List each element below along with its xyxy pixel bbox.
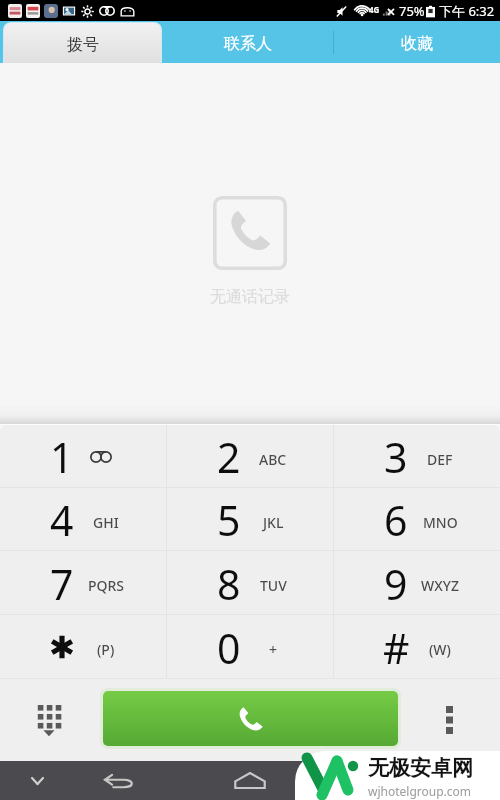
staticText: GHI — [93, 513, 119, 532]
staticText: PQRS — [88, 576, 125, 595]
staticText: 1 — [50, 429, 74, 485]
button[interactable]: More options — [432, 703, 466, 737]
staticText: ABC — [259, 450, 287, 469]
button[interactable]: Home — [226, 761, 274, 800]
staticText: 8 — [217, 556, 241, 612]
staticText: 联系人 — [224, 34, 272, 54]
button[interactable]: (P) — [0, 615, 166, 678]
staticText: MNO — [423, 513, 458, 532]
button[interactable]: 9 — [334, 551, 500, 614]
staticText: 75% — [399, 2, 425, 20]
staticText: JKL — [263, 513, 284, 532]
staticText: (P) — [97, 640, 115, 659]
button[interactable]: 0 — [167, 615, 333, 678]
staticText: 拨号 — [67, 35, 99, 55]
staticText: 4G — [369, 4, 380, 15]
button[interactable]: Call — [103, 691, 398, 746]
staticText: DEF — [427, 450, 453, 469]
staticText: 6 — [384, 492, 408, 548]
button[interactable]: Back — [95, 761, 143, 800]
button[interactable]: 4 — [0, 488, 166, 550]
button[interactable]: Recent apps — [351, 761, 399, 800]
button[interactable]: 2 — [167, 425, 333, 487]
staticText: 2 — [217, 429, 241, 485]
button[interactable]: 7 — [0, 551, 166, 614]
staticText: 7 — [50, 556, 74, 612]
button[interactable]: 联系人 — [162, 21, 333, 63]
staticText: # — [383, 620, 410, 676]
button[interactable]: 拨号 — [4, 23, 161, 63]
staticText: WXYZ — [421, 576, 459, 595]
button[interactable]: 8 — [167, 551, 333, 614]
button[interactable]: 收藏 — [334, 21, 500, 63]
button[interactable]: 3 — [334, 425, 500, 487]
staticText: 收藏 — [401, 34, 433, 54]
staticText: 无通话记录 — [210, 287, 290, 307]
button[interactable]: 1 — [0, 425, 166, 487]
button[interactable]: 5 — [167, 488, 333, 550]
staticText: 无极安卓网 — [368, 755, 473, 781]
staticText: wjhotelgroup.com — [368, 783, 472, 799]
staticText: 0 — [217, 620, 241, 676]
button[interactable]: Show dialpad — [26, 697, 72, 743]
staticText: TUV — [260, 576, 287, 595]
staticText: 下午 6:32 — [439, 2, 495, 20]
button[interactable]: Hide keyboard — [15, 761, 59, 800]
staticText: 9 — [384, 556, 408, 612]
staticText: 3 — [384, 429, 408, 485]
staticText: + — [269, 640, 278, 659]
button[interactable]: 6 — [334, 488, 500, 550]
staticText: 5 — [217, 492, 241, 548]
button[interactable]: # — [334, 615, 500, 678]
staticText: 4 — [50, 492, 74, 548]
staticText: (W) — [429, 640, 451, 659]
